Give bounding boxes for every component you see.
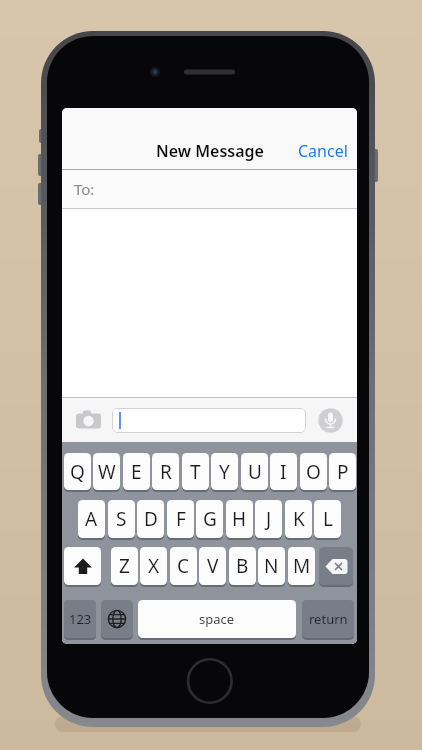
button[interactable] [319, 547, 353, 585]
button[interactable]: J [255, 500, 282, 538]
staticText: Y [219, 459, 230, 485]
button[interactable]: P [329, 453, 356, 490]
staticText: Z [119, 553, 130, 579]
button[interactable]: D [137, 500, 164, 538]
button[interactable]: L [314, 500, 341, 538]
staticText: J [266, 506, 272, 532]
staticText: K [293, 506, 305, 532]
button[interactable]: U [241, 453, 268, 490]
staticText: E [131, 459, 142, 485]
button[interactable]: return [302, 600, 354, 638]
staticText: To: [74, 179, 95, 199]
button[interactable]: S [108, 500, 135, 538]
staticText: S [116, 506, 127, 532]
button[interactable]: I [270, 453, 297, 490]
staticText: Q [70, 459, 85, 485]
button[interactable] [64, 547, 101, 585]
button[interactable] [112, 408, 306, 433]
button[interactable]: B [229, 547, 256, 585]
staticText: X [148, 553, 160, 579]
button[interactable]: N [258, 547, 285, 585]
button[interactable]: M [288, 547, 315, 585]
button[interactable]: A [78, 500, 105, 538]
staticText: return [309, 610, 348, 628]
staticText: L [323, 506, 333, 532]
button[interactable]: R [152, 453, 179, 490]
staticText: P [337, 459, 349, 485]
button[interactable]: Cancel [298, 133, 348, 169]
button[interactable] [318, 408, 343, 433]
button[interactable]: E [123, 453, 150, 490]
staticText: space [199, 610, 235, 628]
staticText: W [98, 459, 116, 485]
staticText: R [160, 459, 172, 485]
button[interactable]: X [140, 547, 167, 585]
staticText: I [280, 459, 287, 485]
button[interactable]: Q [64, 453, 91, 490]
button[interactable]: To: [62, 170, 357, 208]
button[interactable]: C [170, 547, 197, 585]
button[interactable] [101, 600, 133, 638]
staticText: M [293, 553, 311, 579]
staticText: New Message [156, 140, 264, 162]
staticText: A [85, 506, 98, 532]
staticText: G [203, 506, 217, 532]
button[interactable]: T [182, 453, 209, 490]
staticText: O [306, 459, 321, 485]
staticText: T [190, 459, 201, 485]
button[interactable]: W [93, 453, 120, 490]
button[interactable]: F [167, 500, 194, 538]
staticText: F [176, 506, 186, 532]
staticText: D [144, 506, 158, 532]
button[interactable]: V [199, 547, 226, 585]
staticText: Cancel [298, 140, 348, 162]
button[interactable]: H [226, 500, 253, 538]
staticText: C [177, 553, 190, 579]
button[interactable] [75, 409, 102, 429]
button[interactable]: O [300, 453, 327, 490]
staticText: B [236, 553, 249, 579]
staticText: U [248, 459, 262, 485]
button[interactable]: space [138, 600, 296, 638]
staticText: N [264, 553, 279, 579]
staticText: V [207, 553, 219, 579]
staticText: H [232, 506, 247, 532]
button[interactable]: G [196, 500, 223, 538]
button[interactable]: Y [211, 453, 238, 490]
button[interactable]: Z [111, 547, 138, 585]
button[interactable]: K [285, 500, 312, 538]
button[interactable]: 123 [64, 600, 96, 638]
staticText: 123 [69, 610, 92, 628]
